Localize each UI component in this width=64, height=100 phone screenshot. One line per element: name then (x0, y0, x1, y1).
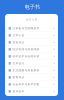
button[interactable]: 计算机与互联网技术 (5, 25, 58, 32)
button[interactable]: 生活健康与美食菜谱 (5, 67, 58, 74)
staticText: 教育考试 (13, 76, 25, 79)
button[interactable]: 社会科学与哲学宗教 (5, 81, 58, 88)
button[interactable]: 历史传记 (5, 39, 58, 46)
button[interactable]: 教育考试 (5, 74, 58, 81)
staticText: 艺术设计 (13, 62, 25, 65)
button[interactable]: 童书绘本 (5, 88, 58, 95)
button[interactable]: 科学技术与自然科普 (5, 53, 58, 60)
staticText: 社会科学与哲学宗教 (13, 83, 40, 86)
staticText: 经济管理与投资理财 (13, 48, 40, 51)
staticText: 全部分类 (25, 18, 37, 21)
staticText: 童书绘本 (13, 90, 25, 93)
staticText: 电子书 (24, 4, 39, 10)
button[interactable]: 经济管理与投资理财 (5, 46, 58, 53)
staticText: 历史传记 (13, 41, 25, 44)
staticText: 科学技术与自然科普 (13, 55, 40, 58)
staticText: 生活健康与美食菜谱 (13, 69, 40, 72)
staticText: 文学小说 (13, 34, 25, 37)
button[interactable]: 艺术设计 (5, 60, 58, 67)
staticText: 计算机与互联网技术 (13, 27, 40, 30)
button[interactable]: 文学小说 (5, 32, 58, 39)
